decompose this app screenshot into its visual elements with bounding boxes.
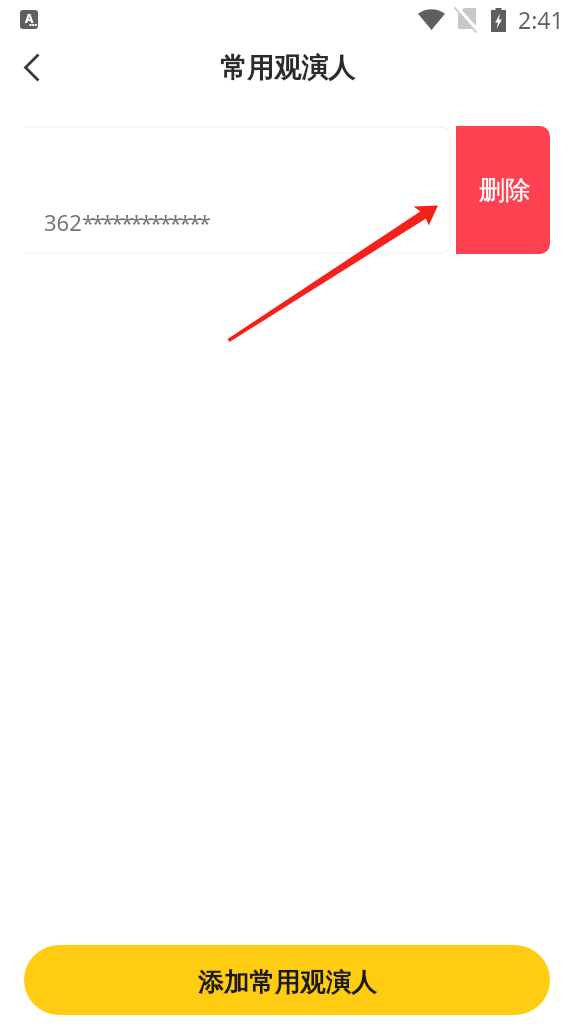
staticText: 添加常用观演人 (198, 966, 377, 998)
button[interactable]: Back (0, 38, 62, 94)
button[interactable]: 添加常用观演人 (24, 945, 550, 1015)
staticText: 362 (44, 207, 82, 237)
button[interactable]: 362 (24, 126, 451, 254)
staticText: 2:41 (518, 4, 564, 35)
staticText: 删除 (479, 174, 531, 207)
staticText: ************* (82, 207, 209, 237)
button[interactable]: 删除 (456, 126, 550, 254)
staticText: A (25, 10, 34, 26)
staticText: 常用观演人 (220, 51, 355, 85)
